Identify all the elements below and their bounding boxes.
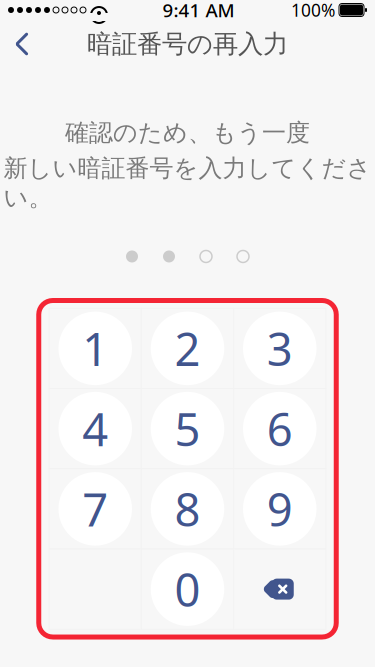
button[interactable]: 0 <box>141 549 234 629</box>
button[interactable]: 削除 <box>234 549 326 629</box>
button[interactable]: 2 <box>141 308 234 388</box>
staticText: 1 <box>82 318 108 378</box>
staticText: 0 <box>174 559 200 619</box>
staticText: 8 <box>174 479 200 539</box>
staticText: 5 <box>174 398 200 459</box>
staticText: 4 <box>82 398 108 459</box>
staticText: 6 <box>267 398 293 459</box>
button[interactable]: 1 <box>49 308 141 388</box>
button[interactable]: 9 <box>234 469 326 549</box>
button[interactable]: 7 <box>49 469 141 549</box>
button[interactable]: 戻る <box>0 22 44 66</box>
button[interactable]: 4 <box>49 388 141 469</box>
staticText: 100% <box>291 0 335 21</box>
button[interactable]: 8 <box>141 469 234 549</box>
button[interactable]: 6 <box>234 388 326 469</box>
button[interactable]: 3 <box>234 308 326 388</box>
staticText: 暗証番号の再入力 <box>87 28 288 59</box>
staticText: 2 <box>174 318 200 378</box>
staticText: 7 <box>82 479 108 539</box>
button[interactable]: 5 <box>141 388 234 469</box>
staticText: 確認のため、もう一度 <box>65 118 310 147</box>
staticText: 9 <box>267 479 293 539</box>
staticText: 3 <box>267 318 293 378</box>
staticText: 9:41 AM <box>162 0 234 22</box>
staticText: 新しい暗証番号を入力してください。 <box>3 153 371 212</box>
